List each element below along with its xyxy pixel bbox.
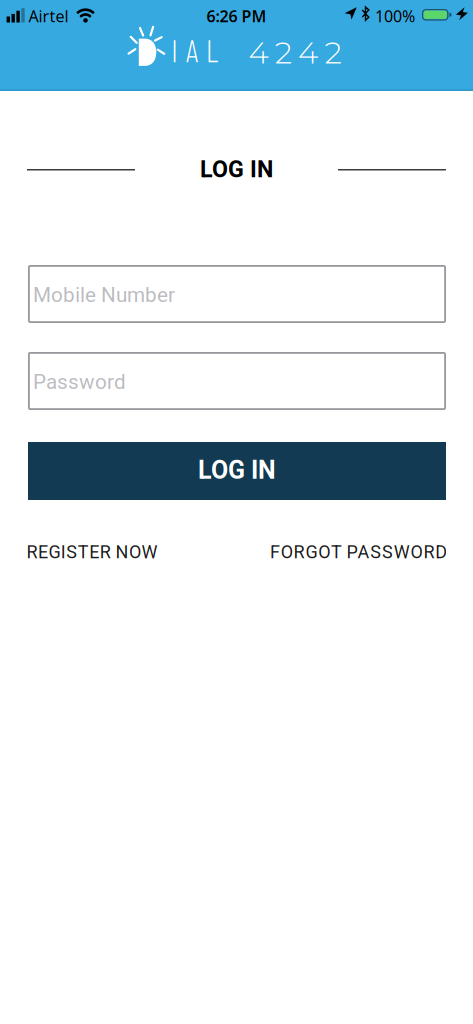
button[interactable]: Mobile Number: [28, 265, 446, 323]
staticText: LOG IN: [198, 453, 276, 489]
staticText: IAL: [171, 31, 218, 68]
staticText: Airtel: [28, 5, 68, 27]
staticText: 4242: [248, 33, 341, 71]
button[interactable]: Password: [28, 352, 446, 410]
staticText: FORGOT PASSWORD: [270, 539, 447, 566]
button[interactable]: REGISTER NOW: [26, 539, 157, 566]
staticText: 100%: [375, 5, 415, 27]
button[interactable]: LOG IN: [28, 442, 446, 500]
staticText: 6:26 PM: [206, 5, 266, 27]
staticText: Mobile Number: [33, 280, 175, 311]
staticText: REGISTER NOW: [26, 539, 157, 566]
staticText: Password: [33, 367, 126, 398]
button[interactable]: FORGOT PASSWORD: [270, 539, 447, 566]
staticText: LOG IN: [200, 153, 273, 187]
